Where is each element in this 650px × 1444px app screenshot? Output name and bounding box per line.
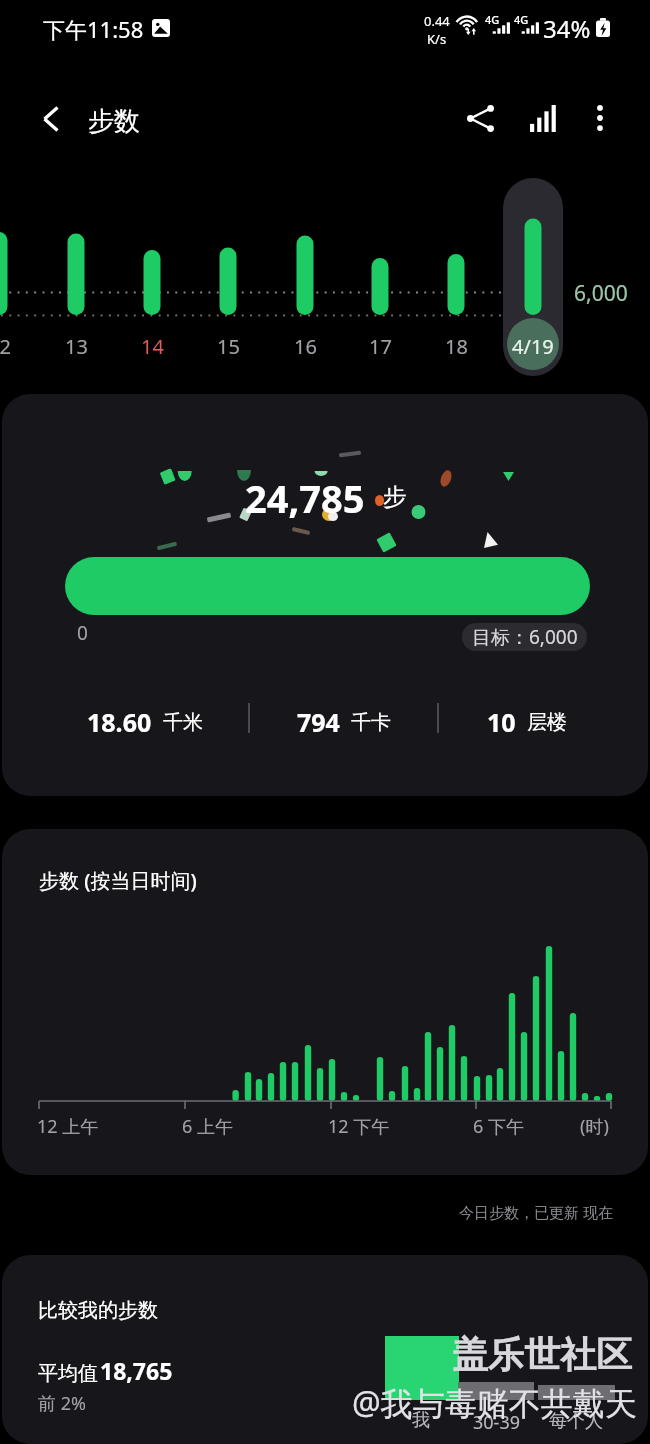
staticText: 盖乐世社区 [452,1332,632,1377]
staticText: K/s [427,30,447,48]
staticText: @我与毒赌不共戴天 [352,1381,637,1425]
staticText: 24,785 [245,472,365,524]
staticText: 18,765 [100,1355,173,1386]
button[interactable]: 24,785 [2,394,648,796]
staticText: 4G [485,12,500,27]
staticText: 15 [217,333,240,360]
staticText: 每个人 [549,1410,603,1433]
button[interactable]: Back [20,88,82,150]
button[interactable]: 18.60 [68,699,222,745]
staticText: 千米 [163,710,203,735]
staticText: 17 [369,333,392,360]
staticText: 下午11:58 [43,14,144,44]
staticText: 平均值 [38,1361,98,1386]
button[interactable]: Statistics [513,88,573,148]
staticText: 10 [487,705,516,739]
staticText: 我 [412,1409,430,1432]
staticText: 层楼 [527,710,567,735]
staticText: 前 2% [38,1391,86,1416]
staticText: 794 [297,705,340,739]
staticText: 18.60 [87,705,152,739]
staticText: 0.44 [424,12,450,30]
button[interactable]: Share [450,88,510,148]
staticText: 步数 (按当日时间) [39,867,197,894]
staticText: 12 下午 [328,1114,390,1139]
staticText: (时) [580,1114,609,1139]
staticText: 4/19 [512,333,554,360]
staticText: 6 下午 [473,1114,524,1139]
staticText: 18 [445,333,468,360]
staticText: 12 上午 [37,1114,99,1139]
staticText: 34% [543,12,591,45]
staticText: 今日步数，已更新 现在 [459,1202,613,1222]
staticText: 4G [514,12,529,27]
staticText: 13 [65,333,88,360]
button[interactable]: 10 [450,699,604,745]
staticText: 目标：6,000 [472,624,578,650]
button[interactable]: 步数 (按当日时间) [2,829,648,1175]
staticText: 6 上午 [182,1114,233,1139]
staticText: 14 [141,333,164,360]
staticText: 30-39 [473,1410,520,1435]
staticText: 千卡 [351,710,391,735]
button[interactable]: 比较我的步数 [2,1255,648,1444]
staticText: 0 [77,620,88,646]
staticText: 12 [0,333,11,360]
button[interactable]: 794 [267,699,421,745]
staticText: 比较我的步数 [38,1298,158,1323]
staticText: 16 [294,333,317,360]
button[interactable]: More options [570,88,630,148]
staticText: 步数 [88,105,140,138]
staticText: 步 [383,482,407,512]
staticText: 6,000 [574,279,628,308]
